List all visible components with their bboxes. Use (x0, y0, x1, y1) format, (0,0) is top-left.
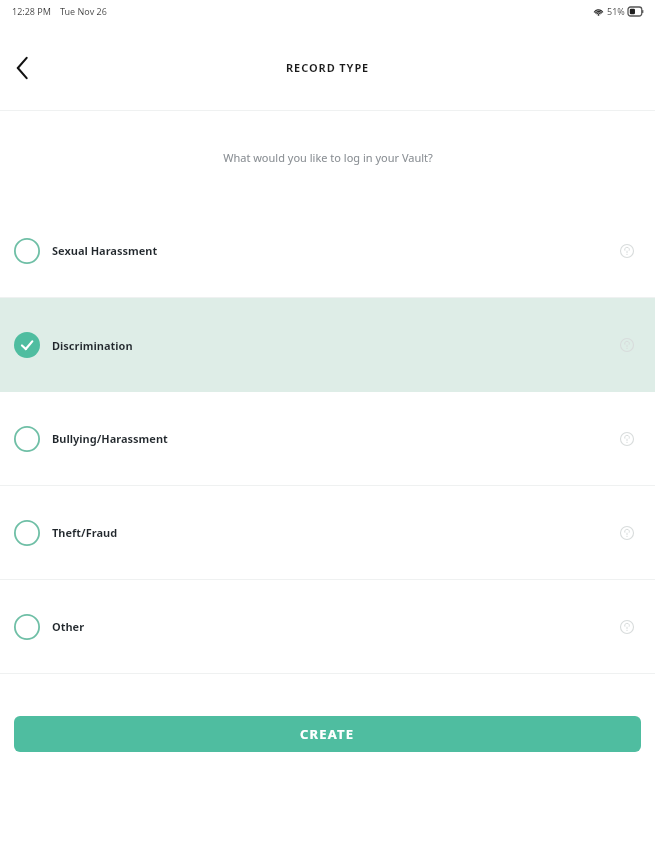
button[interactable]: Other (0, 580, 655, 673)
button[interactable]: Help about Sexual Harassment (611, 235, 643, 267)
button[interactable]: Bullying/Harassment (0, 392, 655, 485)
button[interactable]: Help about Theft/Fraud (611, 517, 643, 549)
staticText: Other (52, 619, 85, 634)
button[interactable]: Help about Bullying/Harassment (611, 423, 643, 455)
button[interactable]: Back (0, 46, 44, 90)
staticText: Theft/Fraud (52, 525, 118, 540)
button[interactable]: Theft/Fraud (0, 486, 655, 579)
staticText: Tue Nov 26 (60, 5, 107, 17)
staticText: Bullying/Harassment (52, 431, 168, 446)
staticText: 51% (607, 5, 625, 17)
button[interactable]: Help about Discrimination (611, 329, 643, 361)
button[interactable]: Discrimination (0, 298, 655, 392)
staticText: What would you like to log in your Vault… (223, 150, 433, 165)
staticText: CREATE (300, 725, 355, 743)
staticText: RECORD TYPE (286, 60, 370, 75)
button[interactable]: CREATE (14, 716, 641, 752)
staticText: 12:28 PM (12, 5, 51, 17)
button[interactable]: Help about Other (611, 611, 643, 643)
staticText: Discrimination (52, 338, 133, 353)
button[interactable]: Sexual Harassment (0, 204, 655, 297)
staticText: Sexual Harassment (52, 243, 158, 258)
